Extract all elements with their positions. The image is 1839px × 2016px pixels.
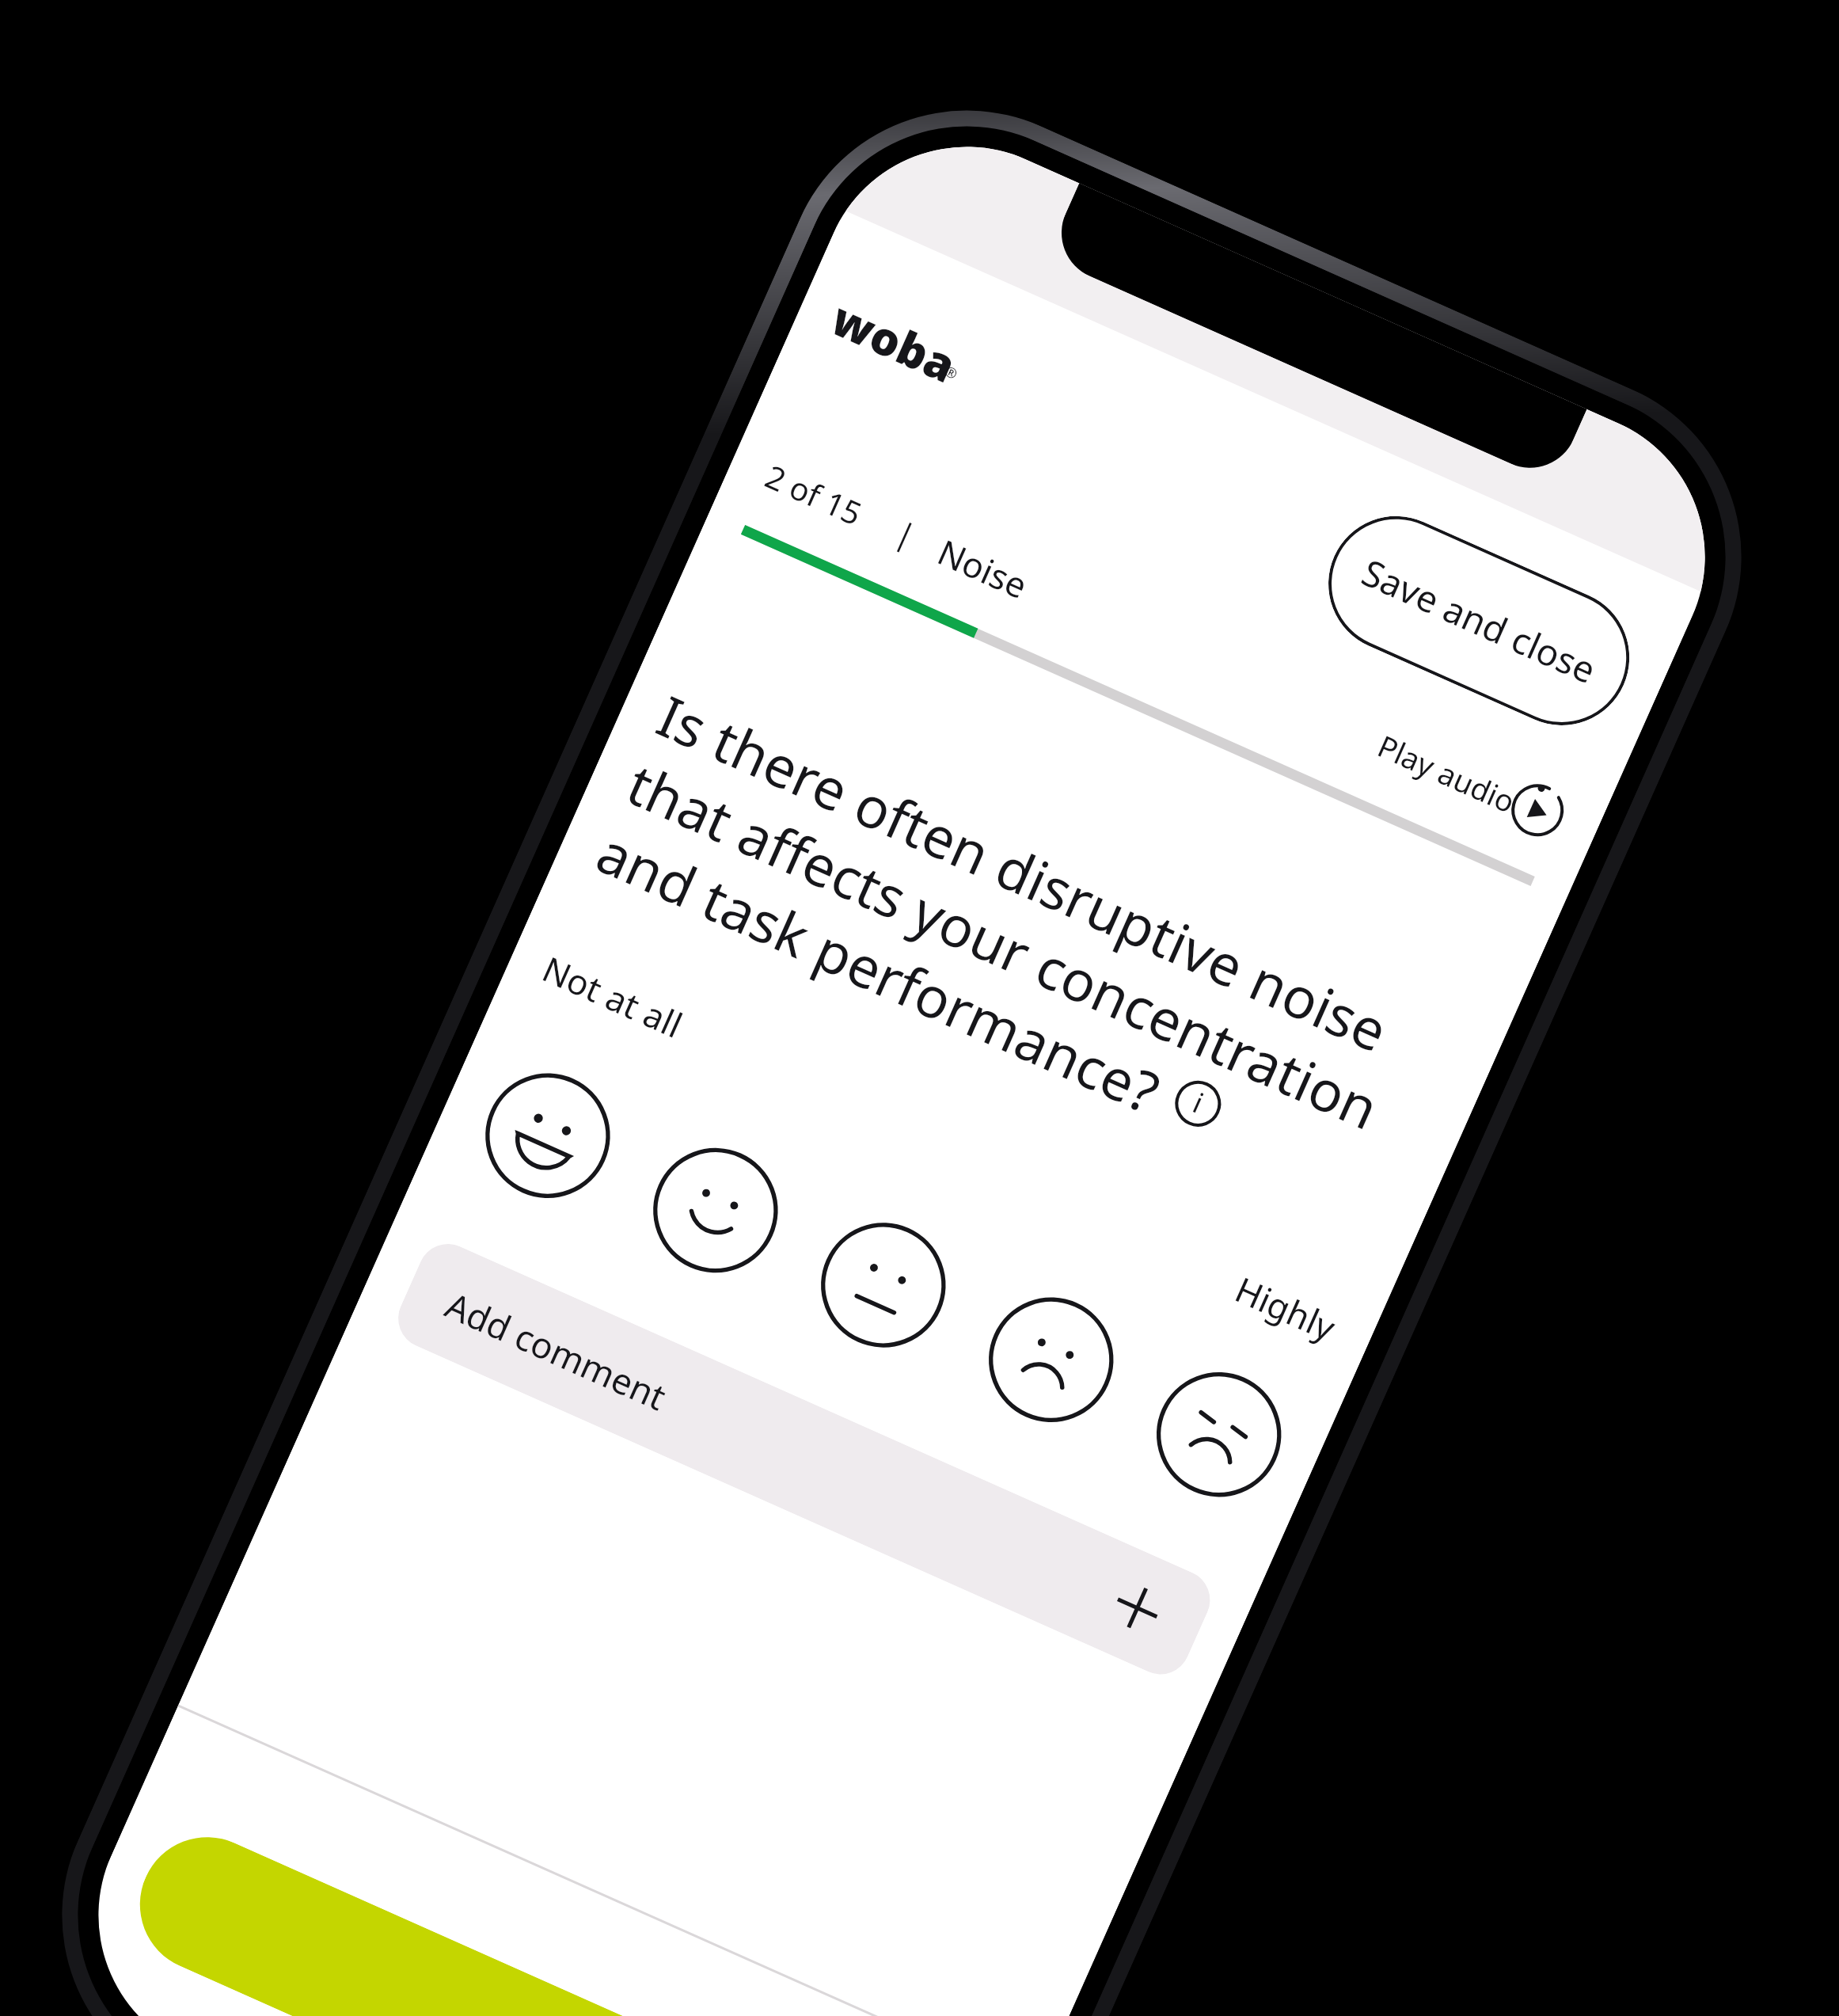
button[interactable]: Rating 2 xyxy=(632,1127,799,1294)
staticText: Save and close xyxy=(1355,547,1604,695)
staticText: Highly xyxy=(1228,1265,1343,1351)
staticText: Not at all xyxy=(535,945,690,1048)
button[interactable]: Info xyxy=(1168,1073,1228,1134)
staticText: i xyxy=(1187,1083,1210,1122)
button[interactable]: Rating 4 xyxy=(967,1276,1135,1443)
staticText: Noise xyxy=(931,528,1035,609)
staticText: ® xyxy=(942,361,961,384)
staticText: Add comment xyxy=(439,1280,674,1421)
staticText: woba xyxy=(822,286,966,396)
button[interactable]: Rating 1 xyxy=(464,1052,631,1219)
other: Add xyxy=(1109,1580,1166,1636)
button[interactable]: Save and close xyxy=(1307,494,1651,747)
staticText: Is there often disruptive noise that aff… xyxy=(586,677,1467,1235)
staticText: 2 of 15 xyxy=(759,454,869,534)
button[interactable]: Next xyxy=(118,1816,961,2016)
button[interactable]: Play audio xyxy=(1502,775,1573,846)
button[interactable]: Rating 3 xyxy=(800,1201,967,1369)
staticText: | xyxy=(889,510,923,557)
staticText: Play audio xyxy=(1372,725,1522,822)
button[interactable]: Rating 5 xyxy=(1135,1351,1302,1518)
button[interactable]: Add comment xyxy=(389,1234,1220,1684)
